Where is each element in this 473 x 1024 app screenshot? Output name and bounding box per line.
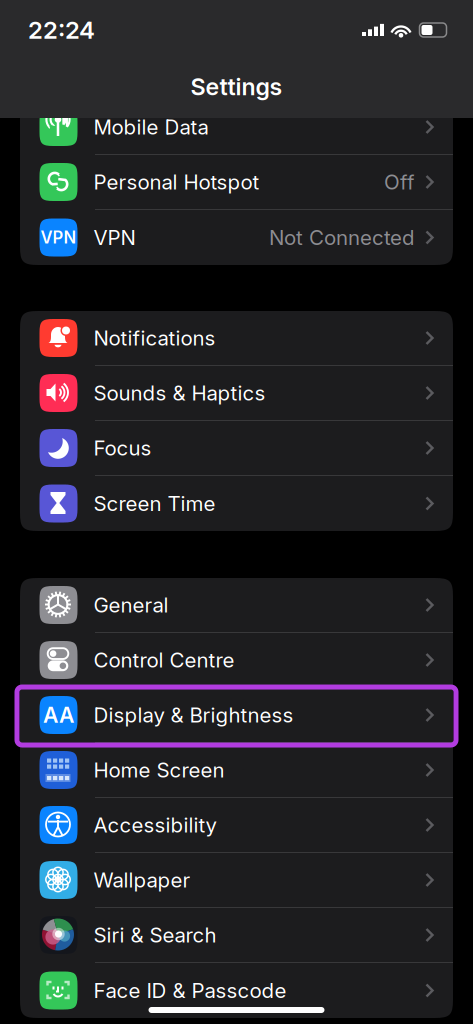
staticText: Settings: [190, 73, 282, 101]
staticText: Home Screen: [93, 758, 224, 782]
button[interactable]: Notifications: [20, 311, 453, 366]
button[interactable]: Home Screen: [20, 743, 453, 798]
staticText: Personal Hotspot: [93, 170, 259, 194]
staticText: Siri & Search: [93, 923, 216, 947]
staticText: 22:24: [28, 15, 95, 44]
button[interactable]: Face ID & Passcode: [20, 963, 453, 1018]
button[interactable]: Focus: [20, 421, 453, 476]
button[interactable]: VPN: [20, 210, 453, 265]
staticText: Screen Time: [93, 491, 215, 516]
button[interactable]: General: [20, 578, 453, 633]
staticText: Notifications: [93, 326, 215, 350]
staticText: Not Connected: [269, 225, 415, 250]
staticText: Sounds & Haptics: [93, 381, 265, 405]
staticText: VPN: [40, 227, 76, 248]
staticText: Face ID & Passcode: [93, 978, 286, 1003]
staticText: Mobile Data: [93, 115, 208, 139]
button[interactable]: Siri & Search: [20, 908, 453, 963]
button[interactable]: AA: [20, 688, 453, 743]
button[interactable]: Mobile Data: [20, 100, 453, 155]
staticText: Display & Brightness: [93, 703, 293, 727]
staticText: VPN: [93, 225, 135, 250]
button[interactable]: Personal Hotspot: [20, 155, 453, 210]
button[interactable]: Control Centre: [20, 633, 453, 688]
staticText: Focus: [93, 436, 151, 460]
button[interactable]: Screen Time: [20, 476, 453, 531]
button[interactable]: Accessibility: [20, 798, 453, 853]
staticText: AA: [43, 702, 74, 728]
staticText: Off: [384, 170, 415, 194]
staticText: General: [93, 593, 168, 617]
staticText: Wallpaper: [93, 868, 190, 892]
button[interactable]: Sounds & Haptics: [20, 366, 453, 421]
staticText: Accessibility: [93, 813, 216, 837]
button[interactable]: Wallpaper: [20, 853, 453, 908]
staticText: Control Centre: [93, 648, 234, 672]
